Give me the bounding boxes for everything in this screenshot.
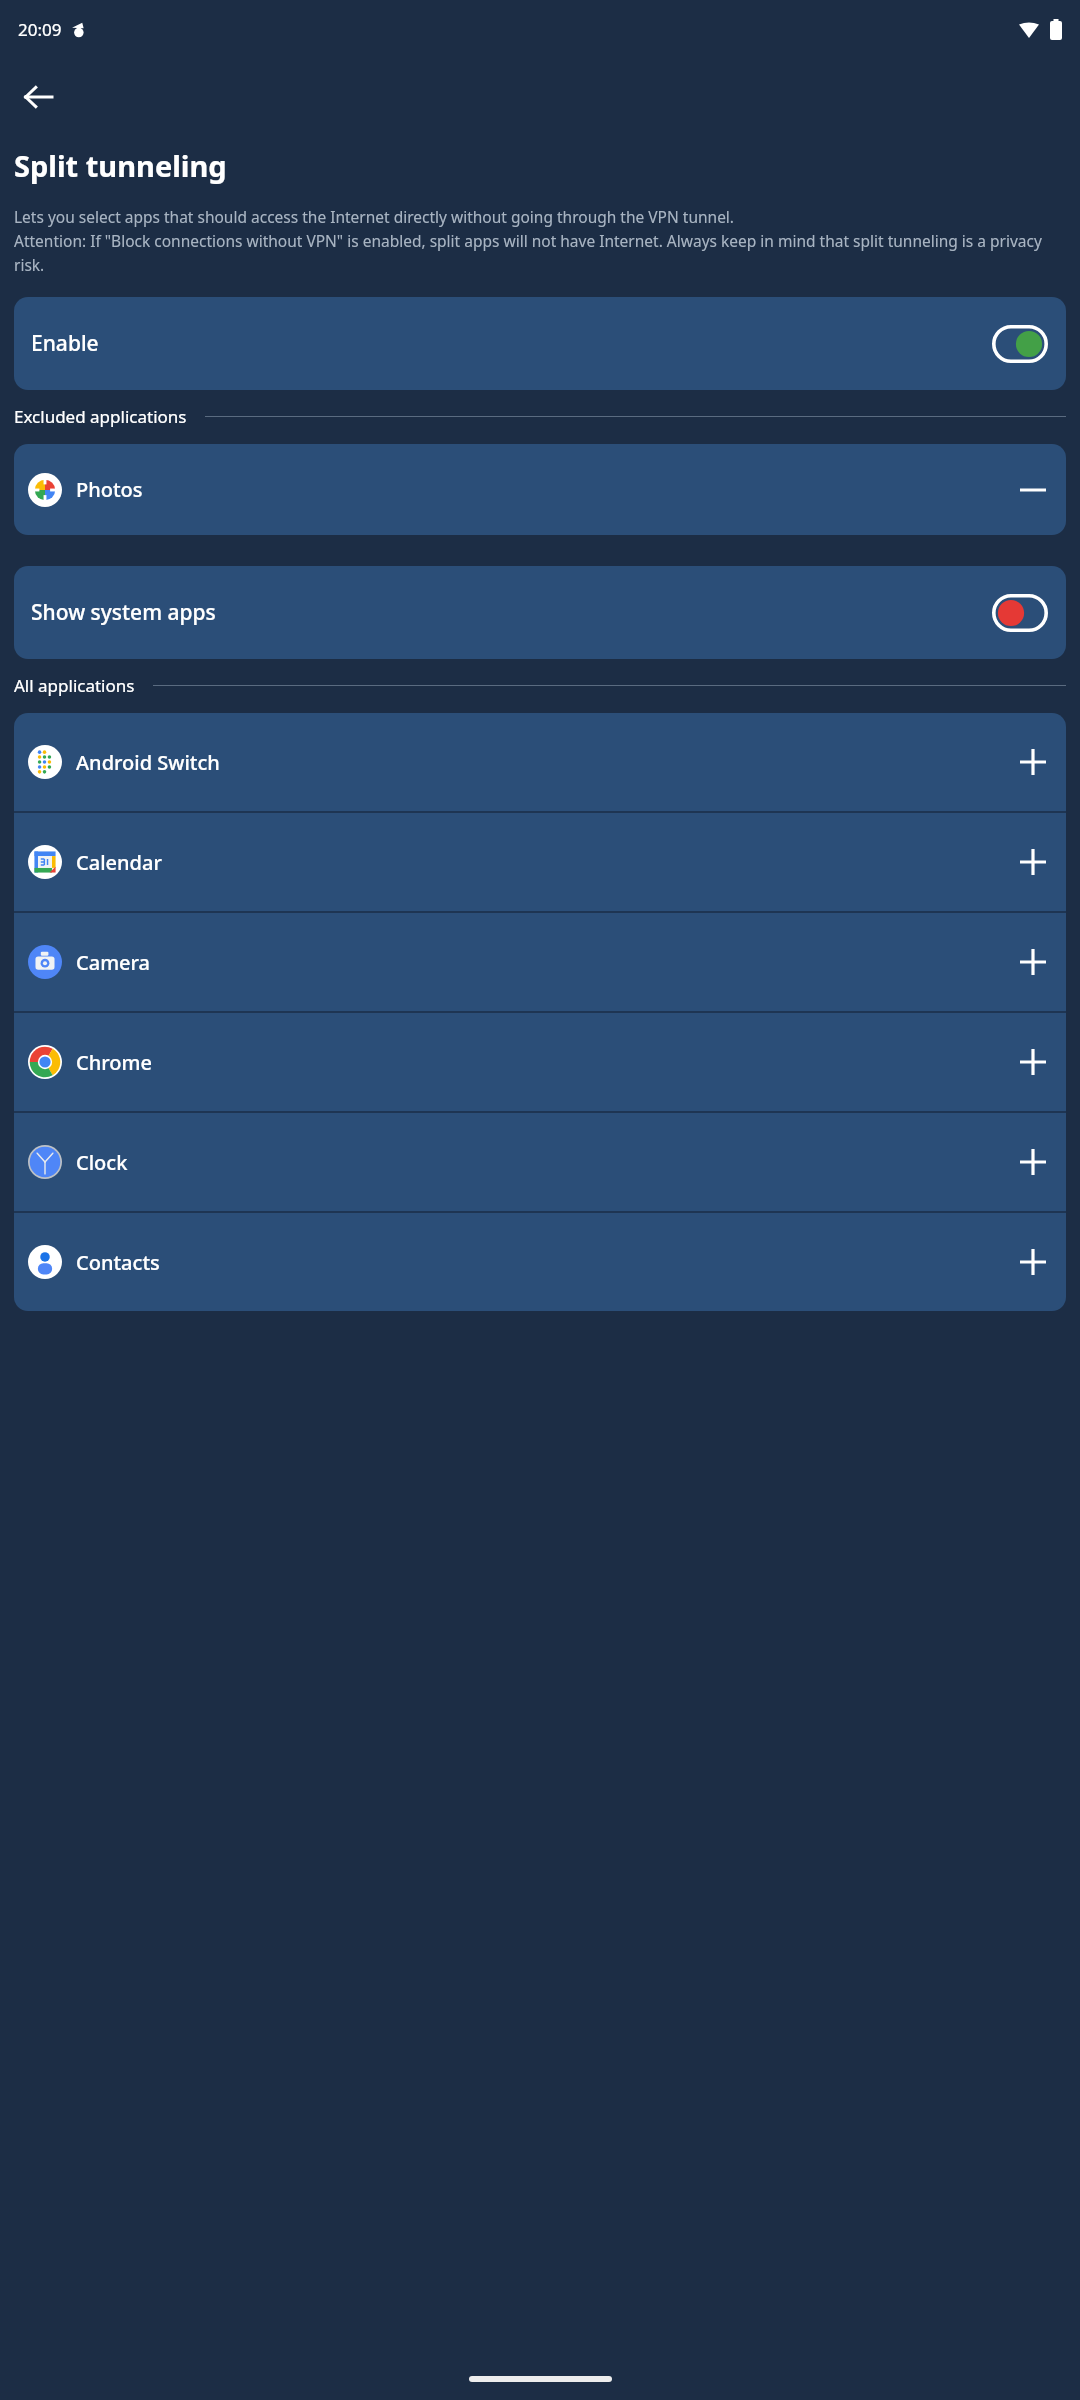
button[interactable]: Enable [14, 297, 1066, 390]
staticText: Contacts [76, 1249, 160, 1276]
staticText: All applications [14, 674, 135, 697]
button[interactable]: Back [10, 69, 66, 125]
button[interactable]: Show system apps [14, 566, 1066, 659]
other: Add Chrome [1014, 1043, 1052, 1081]
other: Add Android Switch [1014, 743, 1052, 781]
staticText: Lets you select apps that should access … [14, 206, 1064, 275]
button[interactable]: Camera [14, 913, 1066, 1011]
staticText: Android Switch [76, 749, 220, 776]
staticText: Excluded applications [14, 405, 187, 428]
button[interactable]: Clock [14, 1113, 1066, 1211]
staticText: 20:09 [18, 18, 62, 41]
other: Remove Photos [1014, 471, 1052, 509]
staticText: Show system apps [31, 598, 216, 627]
button[interactable] [992, 325, 1048, 363]
staticText: Split tunneling [14, 146, 227, 185]
staticText: Chrome [76, 1049, 152, 1076]
button[interactable]: Contacts [14, 1213, 1066, 1311]
other: Add Clock [1014, 1143, 1052, 1181]
staticText: Enable [31, 329, 99, 358]
staticText: Clock [76, 1149, 128, 1176]
other: Add Contacts [1014, 1243, 1052, 1281]
button[interactable]: Android Switch [14, 713, 1066, 811]
staticText: Calendar [76, 849, 162, 876]
button[interactable] [992, 594, 1048, 632]
button[interactable]: Chrome [14, 1013, 1066, 1111]
staticText: Camera [76, 949, 151, 976]
other: Add Calendar [1014, 843, 1052, 881]
button[interactable]: Calendar [14, 813, 1066, 911]
button[interactable]: Photos [14, 444, 1066, 535]
other: Add Camera [1014, 943, 1052, 981]
staticText: Photos [76, 476, 143, 503]
